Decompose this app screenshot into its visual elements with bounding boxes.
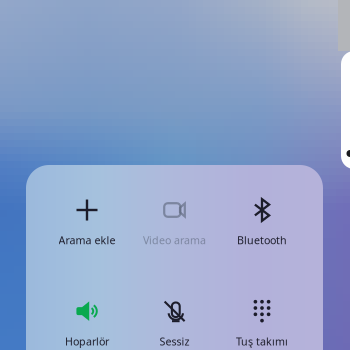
staticText: Bluetooth [237, 233, 287, 247]
button[interactable]: Tuş takımı [218, 298, 306, 348]
staticText: Tuş takımı [236, 334, 288, 348]
button[interactable]: Bluetooth [218, 197, 306, 247]
button[interactable]: Hoparlör [43, 298, 131, 348]
staticText: Video arama [143, 233, 206, 247]
button[interactable]: Video arama [131, 197, 218, 247]
button[interactable]: Sessiz [131, 298, 218, 348]
staticText: Sessiz [159, 334, 189, 348]
button[interactable]: Arama ekle [43, 197, 131, 247]
staticText: Hoparlör [65, 334, 109, 348]
staticText: Arama ekle [58, 233, 115, 247]
